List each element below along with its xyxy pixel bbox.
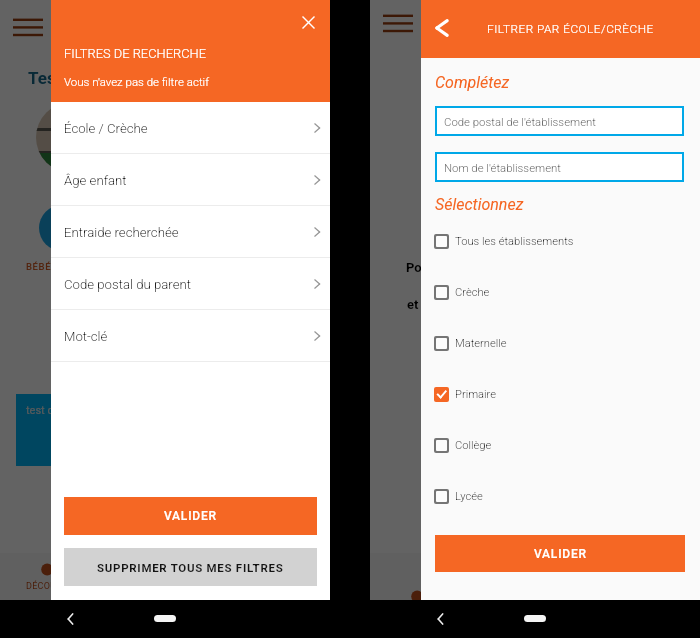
button[interactable]: Tous les établissements [434,226,684,256]
staticText: Crèche [455,286,490,299]
staticText: BÉBÉS [26,261,58,272]
button[interactable]: Home [154,615,176,622]
staticText: Complétez [435,73,510,92]
staticText: et s [407,297,429,312]
button[interactable]: Menu [13,16,43,39]
button[interactable]: Crèche [434,277,684,307]
button[interactable]: Back [427,14,455,42]
button[interactable]: Nom de l'établissement [435,152,684,182]
button[interactable]: VALIDER [64,497,317,535]
staticText: Entraide recherchée [64,225,179,240]
button[interactable]: Home [524,615,546,622]
button[interactable]: Code postal du parent [51,258,330,310]
button[interactable]: Collège [434,430,684,460]
staticText: Collège [455,439,492,452]
staticText: Lycée [455,490,483,503]
button[interactable]: École / Crèche [51,102,330,154]
button[interactable]: Mot-clé [51,310,330,362]
button[interactable]: Menu [383,12,413,35]
button[interactable]: Âge enfant [51,154,330,206]
staticText: Sélectionnez [435,195,524,214]
staticText: Nom de l'établissement [444,161,561,174]
button[interactable]: Primaire [434,379,684,409]
button[interactable]: SUPPRIMER TOUS MES FILTRES [64,548,317,586]
button[interactable]: Back [58,606,84,632]
staticText: Code postal de l'établissement [444,115,596,128]
button[interactable]: Entraide recherchée [51,206,330,258]
button[interactable]: VALIDER [435,535,685,572]
button[interactable]: Close [294,8,322,36]
staticText: test d [26,404,54,417]
staticText: FILTRES DE RECHERCHE [64,46,207,61]
button[interactable]: Code postal de l'établissement [435,106,684,136]
staticText: DÉCOUV [26,581,63,592]
button[interactable]: Back [428,606,454,632]
staticText: VALIDER [534,547,587,561]
staticText: SUPPRIMER TOUS MES FILTRES [97,561,284,574]
staticText: Vous n'avez pas de filtre actif [64,75,209,88]
staticText: École / Crèche [64,121,148,136]
staticText: Primaire [455,388,497,401]
staticText: VALIDER [164,509,217,523]
staticText: Mot-clé [64,329,108,344]
button[interactable]: Lycée [434,481,684,511]
staticText: Âge enfant [64,173,127,188]
staticText: Code postal du parent [64,277,191,292]
staticText: Test de [28,68,85,88]
staticText: Pour [406,260,434,275]
button[interactable]: Maternelle [434,328,684,358]
staticText: FILTRER PAR ÉCOLE/CRÈCHE [487,22,654,36]
staticText: Maternelle [455,337,507,350]
staticText: Tous les établissements [455,235,574,248]
